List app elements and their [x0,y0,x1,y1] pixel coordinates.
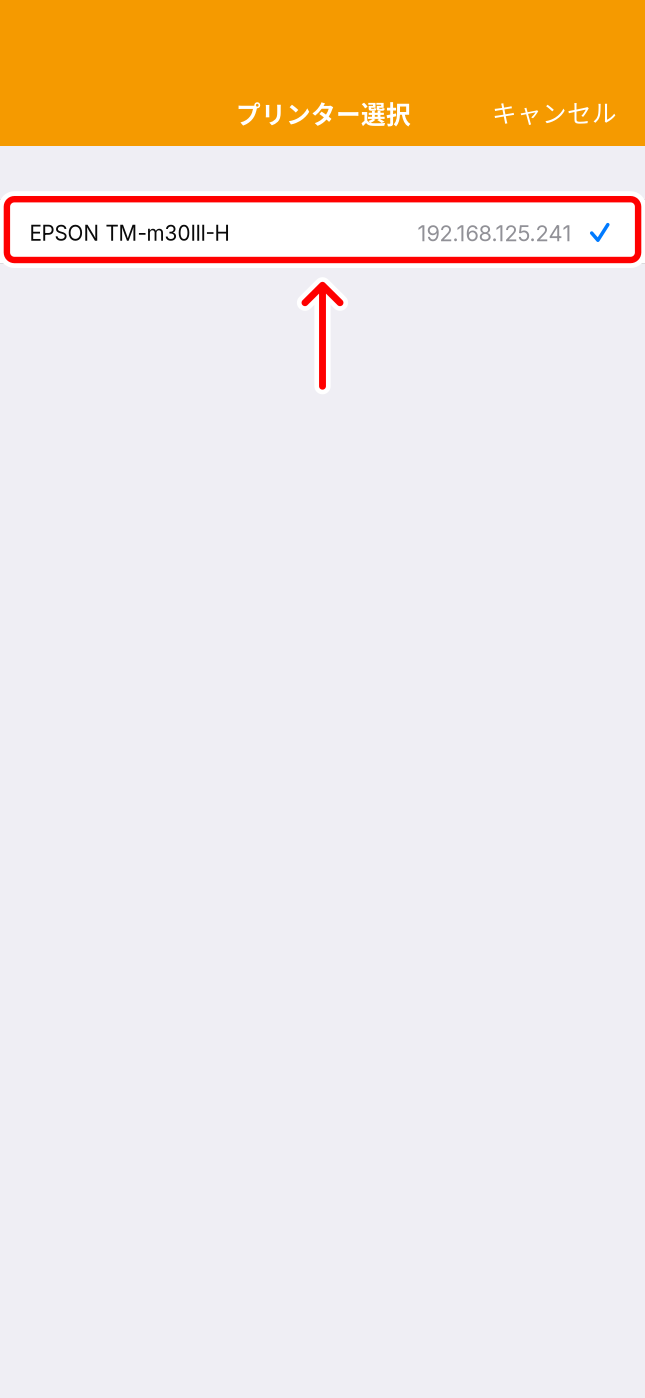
button[interactable]: EPSON TM-m30III-H [0,199,645,264]
staticText: プリンター選択 [236,95,411,131]
button[interactable]: キャンセル [457,84,645,140]
staticText: キャンセル [492,94,617,130]
staticText: 192.168.125.241 [417,220,571,246]
staticText: EPSON TM-m30III-H [29,221,229,246]
